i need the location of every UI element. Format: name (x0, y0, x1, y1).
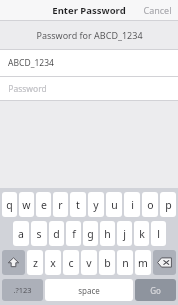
button[interactable]: w (19, 192, 34, 217)
button[interactable]: r (53, 192, 68, 217)
button[interactable]: .?123 (2, 279, 43, 301)
button[interactable]: n (117, 250, 133, 275)
staticText: v (86, 256, 92, 270)
staticText: t (76, 198, 80, 212)
staticText: k (139, 227, 145, 241)
button[interactable]: Go (135, 279, 176, 301)
staticText: d (53, 227, 60, 241)
button[interactable]: k (134, 221, 149, 246)
button[interactable]: p (160, 192, 176, 217)
button[interactable]: t (70, 192, 86, 217)
button[interactable]: Shift (2, 250, 25, 275)
button[interactable]: u (106, 192, 122, 217)
button[interactable]: b (99, 250, 115, 275)
staticText: c (68, 256, 74, 270)
staticText: Go (150, 285, 161, 296)
staticText: h (104, 227, 111, 241)
button[interactable]: c (63, 250, 79, 275)
staticText: p (165, 198, 172, 212)
staticText: q (6, 198, 13, 212)
staticText: r (58, 198, 63, 212)
staticText: z (33, 256, 38, 270)
button[interactable]: h (100, 221, 115, 246)
staticText: a (18, 227, 24, 241)
staticText: j (123, 227, 126, 241)
staticText: o (147, 198, 154, 212)
button[interactable]: ABCD_1234 (0, 50, 178, 76)
staticText: l (157, 227, 160, 241)
button[interactable]: q (2, 192, 17, 217)
staticText: f (72, 227, 76, 241)
button[interactable]: e (36, 192, 51, 217)
button[interactable]: s (31, 221, 47, 246)
button[interactable]: o (142, 192, 158, 217)
staticText: s (36, 227, 42, 241)
staticText: g (87, 227, 94, 241)
staticText: Password (8, 83, 47, 95)
button[interactable]: Password (0, 77, 178, 100)
staticText: u (111, 198, 118, 212)
button[interactable]: i (124, 192, 140, 217)
button[interactable]: a (13, 221, 29, 246)
staticText: m (138, 256, 148, 270)
staticText: y (93, 198, 99, 212)
staticText: Enter Password (52, 4, 126, 17)
staticText: i (131, 198, 134, 212)
staticText: space (78, 285, 100, 296)
staticText: Cancel (143, 4, 172, 16)
button[interactable]: x (45, 250, 61, 275)
button[interactable]: m (135, 250, 151, 275)
staticText: b (104, 256, 111, 270)
button[interactable]: Backspace (153, 250, 176, 275)
button[interactable]: f (66, 221, 81, 246)
staticText: w (22, 198, 31, 212)
button[interactable]: j (117, 221, 132, 246)
staticText: .?123 (13, 285, 32, 295)
staticText: ABCD_1234 (8, 57, 54, 69)
button[interactable]: z (27, 250, 43, 275)
button[interactable]: l (151, 221, 166, 246)
staticText: Password for ABCD_1234 (36, 29, 143, 41)
button[interactable]: space (45, 279, 133, 301)
button[interactable]: d (49, 221, 64, 246)
button[interactable]: g (83, 221, 98, 246)
staticText: n (122, 256, 129, 270)
staticText: x (50, 256, 56, 270)
button[interactable]: Cancel (137, 1, 178, 19)
button[interactable]: v (81, 250, 97, 275)
staticText: e (41, 198, 47, 212)
button[interactable]: y (88, 192, 104, 217)
